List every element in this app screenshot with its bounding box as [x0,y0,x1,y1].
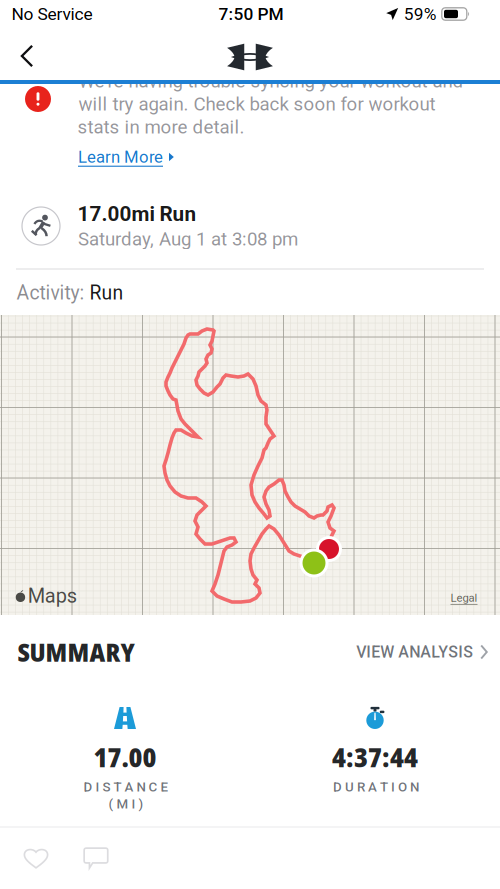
staticText: ( M I ) [108,796,143,812]
staticText: Legal [450,591,477,605]
button[interactable]: VIEW ANALYSIS [356,634,488,670]
button[interactable]: Like [10,835,62,881]
staticText: 59% [404,4,437,24]
button[interactable]: Back [2,30,52,82]
staticText: stats in more detail. [77,116,244,138]
staticText: 17.00mi Run [77,202,196,226]
staticText: Activity: [16,282,89,304]
staticText: No Service [11,4,92,24]
staticText: Run [89,282,123,304]
staticText: D U R A T I O N [333,779,419,795]
staticText: will try again. Check back soon for work… [78,93,435,115]
staticText: Learn More [78,147,163,167]
button[interactable]: Comment [70,835,122,881]
staticText: SUMMARY [17,635,134,669]
staticText: 4:37:44 [332,739,418,775]
button[interactable]: Learn More [78,140,174,174]
staticText: Saturday, Aug 1 at 3:08 pm [78,228,298,250]
staticText: 7:50 PM [218,4,283,24]
staticText: D I S T A N C E [83,779,168,795]
staticText: Maps [28,584,77,608]
staticText: 17.00 [93,739,156,775]
staticText: We're having trouble syncing your workou… [78,70,463,92]
staticText: VIEW ANALYSIS [356,643,473,661]
